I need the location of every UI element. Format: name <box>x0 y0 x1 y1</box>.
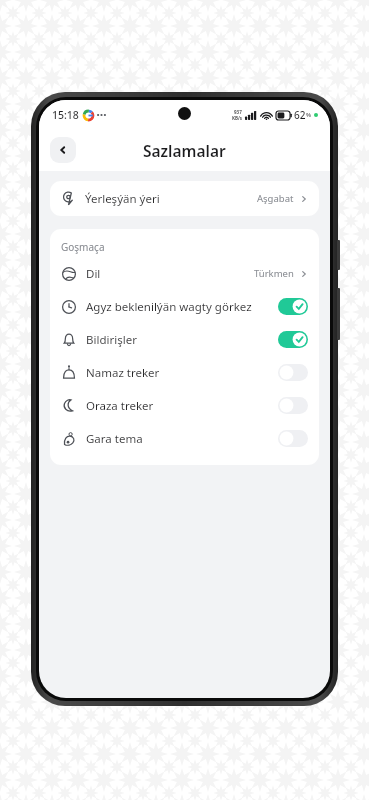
button[interactable]: Gara tema <box>50 422 319 455</box>
button[interactable]: Off <box>278 430 308 447</box>
staticText: 62 <box>294 108 306 122</box>
staticText: Dil <box>86 266 101 282</box>
staticText: Türkmen <box>254 267 294 280</box>
button[interactable]: Off <box>278 397 308 414</box>
staticText: Namaz treker <box>86 365 160 381</box>
button[interactable]: Agyz beklenilýän wagty görkez <box>50 290 319 323</box>
staticText: Gara tema <box>86 431 143 447</box>
staticText: Goşmaça <box>61 240 105 254</box>
button[interactable]: Off <box>278 364 308 381</box>
staticText: 937 <box>234 109 242 115</box>
button[interactable]: On <box>278 298 308 315</box>
button[interactable]: Namaz treker <box>50 356 319 389</box>
button[interactable]: Ýerleşýän ýeri <box>50 181 319 216</box>
button[interactable]: On <box>278 331 308 348</box>
button[interactable]: Oraza treker <box>50 389 319 422</box>
staticText: Bildirişler <box>86 332 137 348</box>
button[interactable]: Back <box>50 137 76 163</box>
button[interactable]: Bildirişler <box>50 323 319 356</box>
button[interactable]: Dil <box>50 257 319 290</box>
staticText: % <box>306 111 312 119</box>
staticText: 15:18 <box>52 108 79 122</box>
staticText: Aşgabat <box>257 192 294 205</box>
staticText: Ýerleşýän ýeri <box>85 191 160 207</box>
staticText: Oraza treker <box>86 398 154 414</box>
staticText: Sazlamalar <box>143 140 226 161</box>
staticText: KB/s <box>232 115 243 121</box>
staticText: Agyz beklenilýän wagty görkez <box>86 299 252 315</box>
